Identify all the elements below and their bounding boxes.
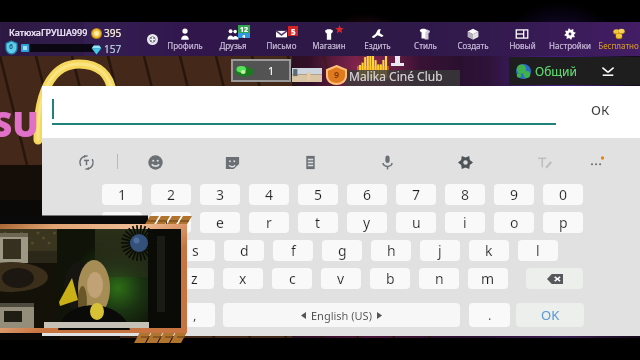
- button[interactable]: c: [272, 268, 312, 289]
- button[interactable]: Clipboard: [292, 144, 328, 180]
- button[interactable]: d: [224, 240, 264, 261]
- button[interactable]: 6: [347, 184, 387, 205]
- button[interactable]: [2, 22, 84, 56]
- staticText: u: [412, 213, 421, 232]
- staticText: 1: [118, 185, 127, 204]
- staticText: i: [463, 213, 467, 232]
- staticText: j: [438, 241, 442, 260]
- staticText: 8: [461, 185, 470, 204]
- button[interactable]: Collapse chat: [599, 62, 617, 80]
- button[interactable]: Стиль: [401, 22, 449, 56]
- button[interactable]: u: [396, 212, 436, 233]
- button[interactable]: OK: [516, 303, 584, 327]
- button[interactable]: Translate: [68, 144, 104, 180]
- button[interactable]: y: [347, 212, 387, 233]
- button[interactable]: Магазин: [305, 22, 353, 56]
- button[interactable]: Voice input: [369, 144, 405, 180]
- button[interactable]: w: [151, 212, 191, 233]
- staticText: English (US): [311, 308, 372, 323]
- button[interactable]: i: [445, 212, 485, 233]
- button[interactable]: More options: [578, 144, 614, 180]
- button[interactable]: 5: [257, 22, 305, 56]
- button[interactable]: Stickers: [214, 144, 250, 180]
- button[interactable]: Handwriting: [526, 144, 562, 180]
- button[interactable]: t: [298, 212, 338, 233]
- button[interactable]: Add currency: [147, 34, 158, 45]
- button[interactable]: English (US): [223, 303, 460, 327]
- button[interactable]: 7: [396, 184, 436, 205]
- staticText: w: [165, 213, 177, 232]
- button[interactable]: p: [543, 212, 583, 233]
- button[interactable]: Профиль: [161, 22, 209, 56]
- staticText: o: [510, 213, 519, 232]
- staticText: 6: [363, 185, 372, 204]
- button[interactable]: Emoji: [137, 144, 173, 180]
- button[interactable]: s: [175, 240, 215, 261]
- button[interactable]: f: [273, 240, 313, 261]
- staticText: ОК: [591, 101, 610, 119]
- button[interactable]: Новый: [498, 22, 546, 56]
- button[interactable]: k: [469, 240, 509, 261]
- button[interactable]: 9: [494, 184, 534, 205]
- staticText: n: [435, 269, 444, 288]
- staticText: 5: [291, 26, 296, 36]
- button[interactable]: z: [174, 268, 214, 289]
- button[interactable]: 3: [200, 184, 240, 205]
- button[interactable]: Keyboard settings: [447, 144, 483, 180]
- button[interactable]: Создать: [449, 22, 497, 56]
- button[interactable]: 8: [445, 184, 485, 205]
- staticText: 7: [412, 185, 421, 204]
- button[interactable]: Backspace: [526, 268, 583, 289]
- staticText: z: [191, 269, 198, 288]
- staticText: y: [363, 213, 371, 232]
- button[interactable]: 2: [151, 184, 191, 205]
- button[interactable]: 1: [231, 59, 291, 82]
- staticText: 1: [268, 63, 275, 78]
- button[interactable]: Бесплатно: [594, 22, 640, 56]
- button[interactable]: q: [102, 212, 142, 233]
- button[interactable]: l: [518, 240, 558, 261]
- button[interactable]: ?123: [102, 303, 166, 327]
- staticText: 12: [240, 25, 249, 33]
- button[interactable]: ,: [174, 303, 215, 327]
- button[interactable]: 5: [298, 184, 338, 205]
- staticText: Настройки: [549, 40, 591, 51]
- button[interactable]: Ездить: [353, 22, 401, 56]
- staticText: 157: [104, 42, 122, 56]
- button[interactable]: g: [322, 240, 362, 261]
- button[interactable]: 4: [249, 184, 289, 205]
- button[interactable]: a: [126, 240, 166, 261]
- button[interactable]: Общий: [509, 57, 640, 85]
- staticText: q: [118, 213, 127, 232]
- staticText: v: [337, 269, 345, 288]
- staticText: s: [192, 241, 199, 260]
- staticText: ,: [193, 306, 197, 324]
- staticText: Создать: [457, 40, 489, 51]
- staticText: t: [315, 213, 321, 232]
- button[interactable]: 0: [543, 184, 583, 205]
- button[interactable]: x: [223, 268, 263, 289]
- button[interactable]: b: [370, 268, 410, 289]
- button[interactable]: n: [419, 268, 459, 289]
- staticText: c: [289, 269, 296, 288]
- button[interactable]: e: [200, 212, 240, 233]
- staticText: 9: [510, 185, 519, 204]
- button[interactable]: Настройки: [546, 22, 594, 56]
- button[interactable]: 12: [209, 22, 257, 56]
- button[interactable]: Shift: [102, 268, 166, 289]
- staticText: g: [338, 241, 347, 260]
- button[interactable]: v: [321, 268, 361, 289]
- button[interactable]: o: [494, 212, 534, 233]
- button[interactable]: .: [469, 303, 510, 327]
- staticText: m: [481, 269, 495, 288]
- button[interactable]: ОК: [580, 97, 620, 123]
- staticText: e: [216, 213, 224, 232]
- staticText: 395: [104, 26, 122, 40]
- button[interactable]: 1: [102, 184, 142, 205]
- staticText: Профиль: [167, 40, 203, 51]
- button[interactable]: h: [371, 240, 411, 261]
- button[interactable]: m: [468, 268, 508, 289]
- staticText: Друзья: [219, 40, 247, 51]
- button[interactable]: j: [420, 240, 460, 261]
- button[interactable]: r: [249, 212, 289, 233]
